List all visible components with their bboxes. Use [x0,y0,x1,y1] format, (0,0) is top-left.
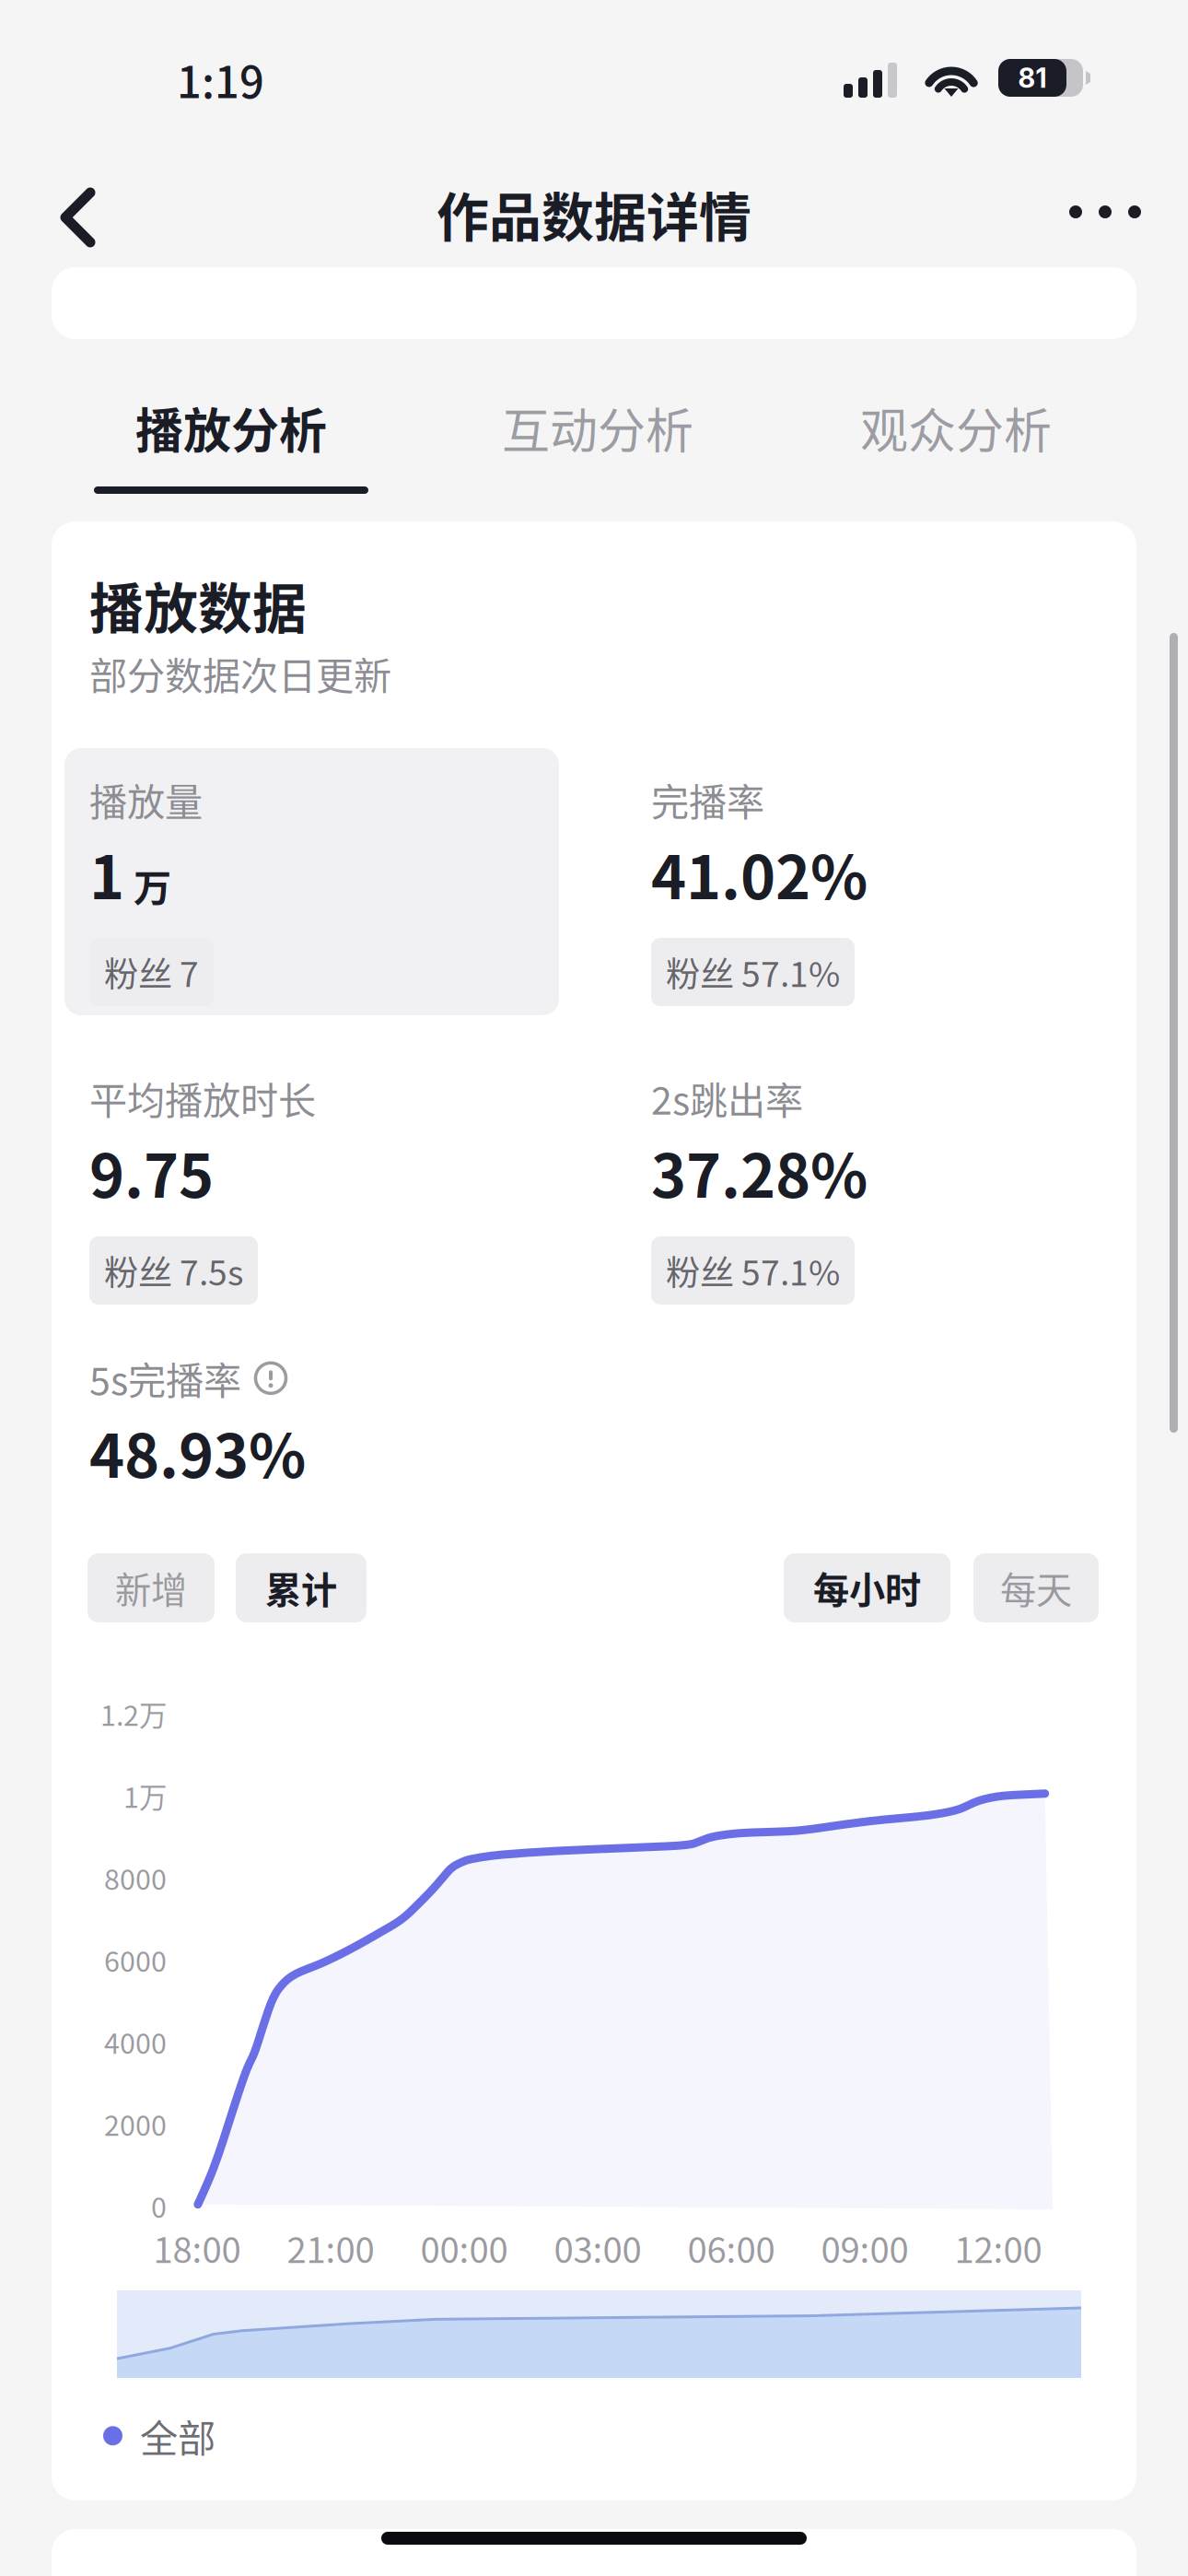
staticText: 8000 [104,1857,167,1898]
staticText: 4000 [104,2021,167,2062]
staticText: 平均播放时长 [89,1071,316,1125]
button[interactable]: 2s跳出率 [651,1071,1093,1301]
button[interactable]: 5s完播率 [89,1351,587,1516]
staticText: 1.2万 [100,1693,167,1734]
button[interactable]: 累计 [236,1553,367,1622]
button[interactable]: 每天 [973,1553,1099,1622]
button[interactable]: Back [18,164,138,271]
button[interactable]: 平均播放时长 [89,1071,587,1301]
staticText: 2s跳出率 [651,1071,803,1125]
staticText: 粉丝 7.5s [104,1246,243,1295]
staticText: 每天 [1000,1562,1072,1614]
staticText: 部分数据次日更新 [89,646,391,701]
button[interactable]: 完播率 [651,772,1093,1002]
button[interactable]: 新增 [87,1553,215,1622]
staticText: 新增 [115,1562,187,1614]
staticText: 1:19 [177,48,264,111]
staticText: 万 [134,858,171,913]
staticText: 6000 [104,1939,167,1980]
staticText: 48.93% [89,1409,306,1495]
staticText: 18:00 [153,2222,241,2273]
staticText: 粉丝 7 [104,947,199,997]
staticText: 21:00 [287,2222,374,2273]
staticText: 37.28% [651,1129,868,1215]
staticText: 全部 [140,2408,215,2463]
staticText: 03:00 [554,2222,641,2273]
button[interactable]: 观众分析 [819,365,1093,503]
staticText: 观众分析 [860,393,1052,462]
button[interactable]: More [1042,158,1168,265]
staticText: 播放量 [89,772,203,827]
staticText: 0 [151,2185,167,2226]
staticText: 41.02% [651,830,868,916]
staticText: 作品数据详情 [437,176,751,252]
staticText: 81 [1018,62,1047,94]
staticText: 粉丝 57.1% [666,947,840,997]
staticText: 粉丝 57.1% [666,1246,840,1295]
button[interactable]: 每小时 [784,1553,950,1622]
staticText: 1 [89,830,124,916]
staticText: 2000 [104,2103,167,2144]
button[interactable]: 播放量 [89,772,531,1002]
staticText: 9.75 [89,1129,214,1215]
staticText: 09:00 [821,2222,908,2273]
staticText: 完播率 [651,772,764,827]
staticText: 5s完播率 [89,1351,241,1406]
staticText: 互动分析 [502,393,693,462]
staticText: 每小时 [813,1562,921,1614]
staticText: 06:00 [687,2222,775,2273]
staticText: 播放分析 [135,393,327,462]
button[interactable]: 播放分析 [94,365,368,503]
staticText: 1万 [123,1775,167,1816]
staticText: 12:00 [955,2222,1042,2273]
staticText: 播放数据 [89,566,307,644]
staticText: 累计 [265,1562,337,1614]
button[interactable]: 互动分析 [460,365,735,503]
staticText: 00:00 [420,2222,508,2273]
